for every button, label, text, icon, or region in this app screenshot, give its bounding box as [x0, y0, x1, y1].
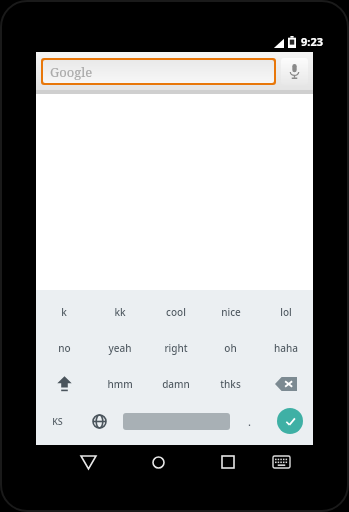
button[interactable]: k: [36, 294, 92, 330]
staticText: kk: [114, 305, 126, 319]
button[interactable]: thks: [203, 366, 258, 402]
staticText: hmm: [107, 377, 133, 391]
staticText: k: [61, 305, 67, 319]
button[interactable]: Change language: [78, 402, 121, 440]
staticText: haha: [274, 341, 298, 355]
staticText: KS: [52, 415, 63, 427]
staticText: lol: [280, 305, 292, 319]
staticText: .: [248, 414, 251, 429]
button[interactable]: Shift: [36, 366, 92, 402]
button[interactable]: Recent apps: [206, 447, 250, 477]
button[interactable]: hmm: [92, 366, 148, 402]
staticText: 9:23: [301, 34, 323, 49]
button[interactable]: Voice search: [281, 58, 308, 85]
button[interactable]: Home: [136, 447, 180, 477]
button[interactable]: damn: [148, 366, 203, 402]
button[interactable]: lol: [258, 294, 313, 330]
staticText: thks: [220, 377, 241, 391]
staticText: oh: [224, 341, 237, 355]
button[interactable]: .: [232, 402, 266, 440]
staticText: right: [164, 341, 188, 355]
button[interactable]: Back: [66, 447, 110, 477]
button[interactable]: kk: [92, 294, 148, 330]
button[interactable]: right: [148, 330, 203, 366]
button[interactable]: cool: [148, 294, 203, 330]
staticText: yeah: [108, 341, 132, 355]
button[interactable]: Switch keyboard: [264, 447, 298, 477]
staticText: nice: [221, 305, 241, 319]
button[interactable]: Enter: [277, 408, 303, 434]
staticText: cool: [166, 305, 186, 319]
button[interactable]: Google: [43, 60, 274, 83]
button[interactable]: KS: [36, 402, 78, 440]
button[interactable]: yeah: [92, 330, 148, 366]
button[interactable]: no: [36, 330, 92, 366]
staticText: no: [58, 341, 71, 355]
button[interactable]: nice: [203, 294, 258, 330]
button[interactable]: oh: [203, 330, 258, 366]
button[interactable]: Backspace: [258, 366, 313, 402]
button[interactable]: Space: [123, 413, 230, 430]
staticText: damn: [162, 377, 190, 391]
staticText: Google: [50, 63, 93, 81]
button[interactable]: haha: [258, 330, 313, 366]
